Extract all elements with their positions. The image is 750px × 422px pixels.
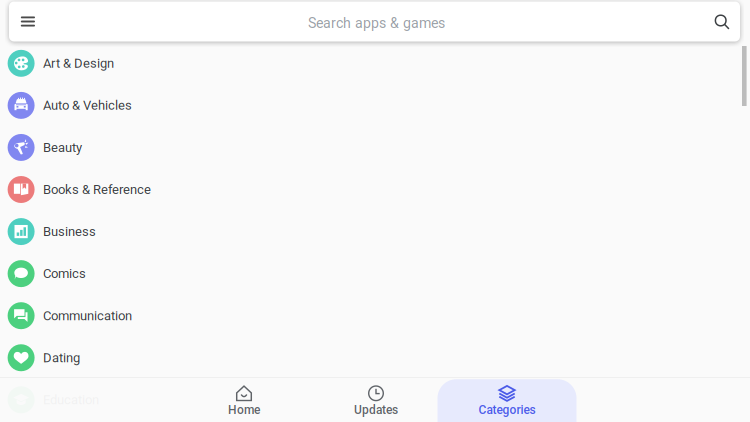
staticText: Communication [43, 308, 132, 323]
staticText: Beauty [43, 140, 82, 155]
staticText: Art & Design [43, 56, 114, 71]
staticText: Dating [43, 350, 80, 365]
button[interactable]: Home [174, 377, 313, 422]
button[interactable]: Education [0, 379, 750, 421]
staticText: Updates [354, 403, 398, 417]
button[interactable]: Search [701, 1, 740, 41]
button[interactable]: Updates [306, 377, 445, 422]
button[interactable]: Business [0, 210, 750, 253]
button[interactable]: Books & Reference [0, 168, 750, 211]
button[interactable]: Dating [0, 337, 750, 379]
staticText: Home [228, 403, 260, 417]
button[interactable]: Communication [0, 295, 750, 337]
staticText: Auto & Vehicles [43, 98, 132, 113]
staticText: Books & Reference [43, 182, 151, 197]
staticText: Categories [478, 403, 535, 417]
staticText: Business [43, 224, 96, 239]
button[interactable]: Comics [0, 253, 750, 295]
staticText: Comics [43, 266, 86, 281]
button[interactable]: Open navigation menu [9, 1, 47, 41]
button[interactable]: Categories [437, 377, 576, 422]
button[interactable]: Auto & Vehicles [0, 84, 750, 126]
staticText: Search apps & games [308, 15, 445, 31]
button[interactable]: Beauty [0, 126, 750, 168]
button[interactable]: Art & Design [0, 42, 750, 84]
